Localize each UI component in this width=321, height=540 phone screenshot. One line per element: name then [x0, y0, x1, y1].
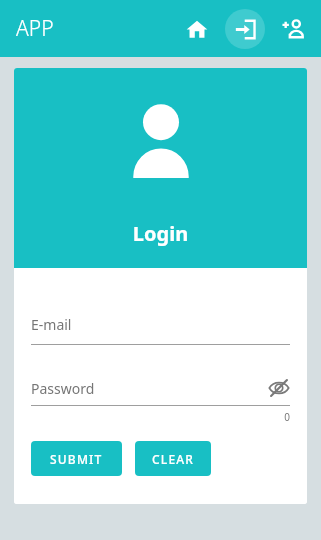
button[interactable]: Password — [31, 377, 290, 424]
button[interactable]: Home — [177, 9, 217, 49]
button[interactable]: Register — [273, 9, 313, 49]
staticText: APP — [16, 14, 54, 43]
staticText: 0 — [31, 410, 290, 424]
staticText: E-mail — [31, 315, 72, 334]
button[interactable]: CLEAR — [135, 441, 211, 476]
button[interactable]: E-mail — [31, 315, 290, 345]
button[interactable]: Toggle password visibility — [268, 377, 290, 399]
button[interactable]: Login — [225, 9, 265, 49]
staticText: Password — [31, 379, 95, 398]
staticText: CLEAR — [152, 451, 195, 467]
button[interactable]: SUBMIT — [31, 441, 122, 476]
staticText: SUBMIT — [50, 451, 103, 467]
staticText: Login — [14, 220, 307, 247]
